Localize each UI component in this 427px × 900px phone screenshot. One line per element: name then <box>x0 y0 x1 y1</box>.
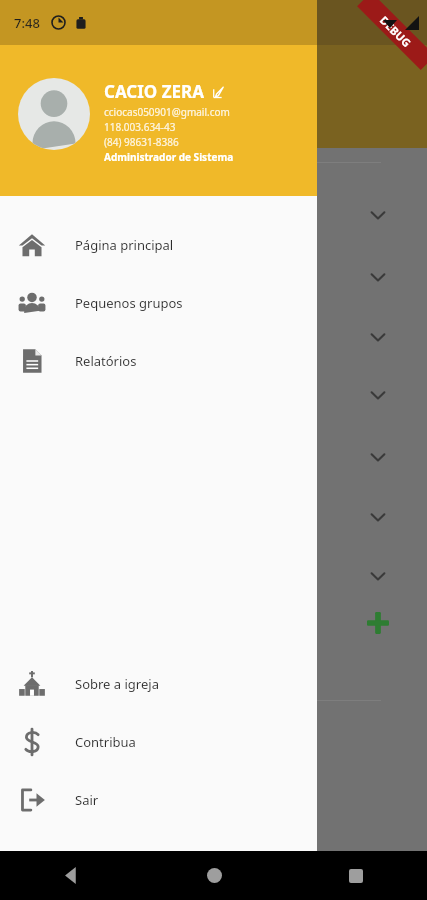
button[interactable]: Home <box>143 851 285 900</box>
button[interactable]: Expand <box>363 442 393 472</box>
staticText: Contribua <box>75 733 136 751</box>
staticText: cciocas050901@gmail.com <box>104 105 230 119</box>
button[interactable]: Expand <box>363 380 393 410</box>
button[interactable]: Sair <box>0 771 317 829</box>
button[interactable]: Contribua <box>0 713 317 771</box>
button[interactable]: Expand <box>363 502 393 532</box>
staticText: Sair <box>75 791 99 809</box>
button[interactable]: Expand <box>363 262 393 292</box>
button[interactable]: Sobre a igreja <box>0 655 317 713</box>
button[interactable]: Edit profile <box>211 84 227 100</box>
button[interactable]: Pequenos grupos <box>0 274 317 332</box>
button[interactable]: Back <box>0 851 143 900</box>
staticText: (84) 98631-8386 <box>104 135 179 149</box>
staticText: DEBUG <box>377 13 414 50</box>
staticText: Relatórios <box>75 352 137 370</box>
button[interactable]: Expand <box>363 200 393 230</box>
button[interactable]: Add <box>363 608 393 638</box>
button[interactable]: Recent apps <box>285 851 427 900</box>
staticText: Sobre a igreja <box>75 675 159 693</box>
staticText: CACIO ZERA <box>104 80 205 103</box>
staticText: Pequenos grupos <box>75 294 183 312</box>
staticText: Administrador de Sistema <box>104 150 234 164</box>
staticText: 118.003.634-43 <box>104 120 176 134</box>
button[interactable]: Expand <box>363 322 393 352</box>
button[interactable]: Página principal <box>0 216 317 274</box>
button[interactable]: Expand <box>363 561 393 591</box>
button[interactable]: Relatórios <box>0 332 317 390</box>
staticText: Página principal <box>75 236 174 254</box>
staticText: 7:48 <box>14 14 40 32</box>
